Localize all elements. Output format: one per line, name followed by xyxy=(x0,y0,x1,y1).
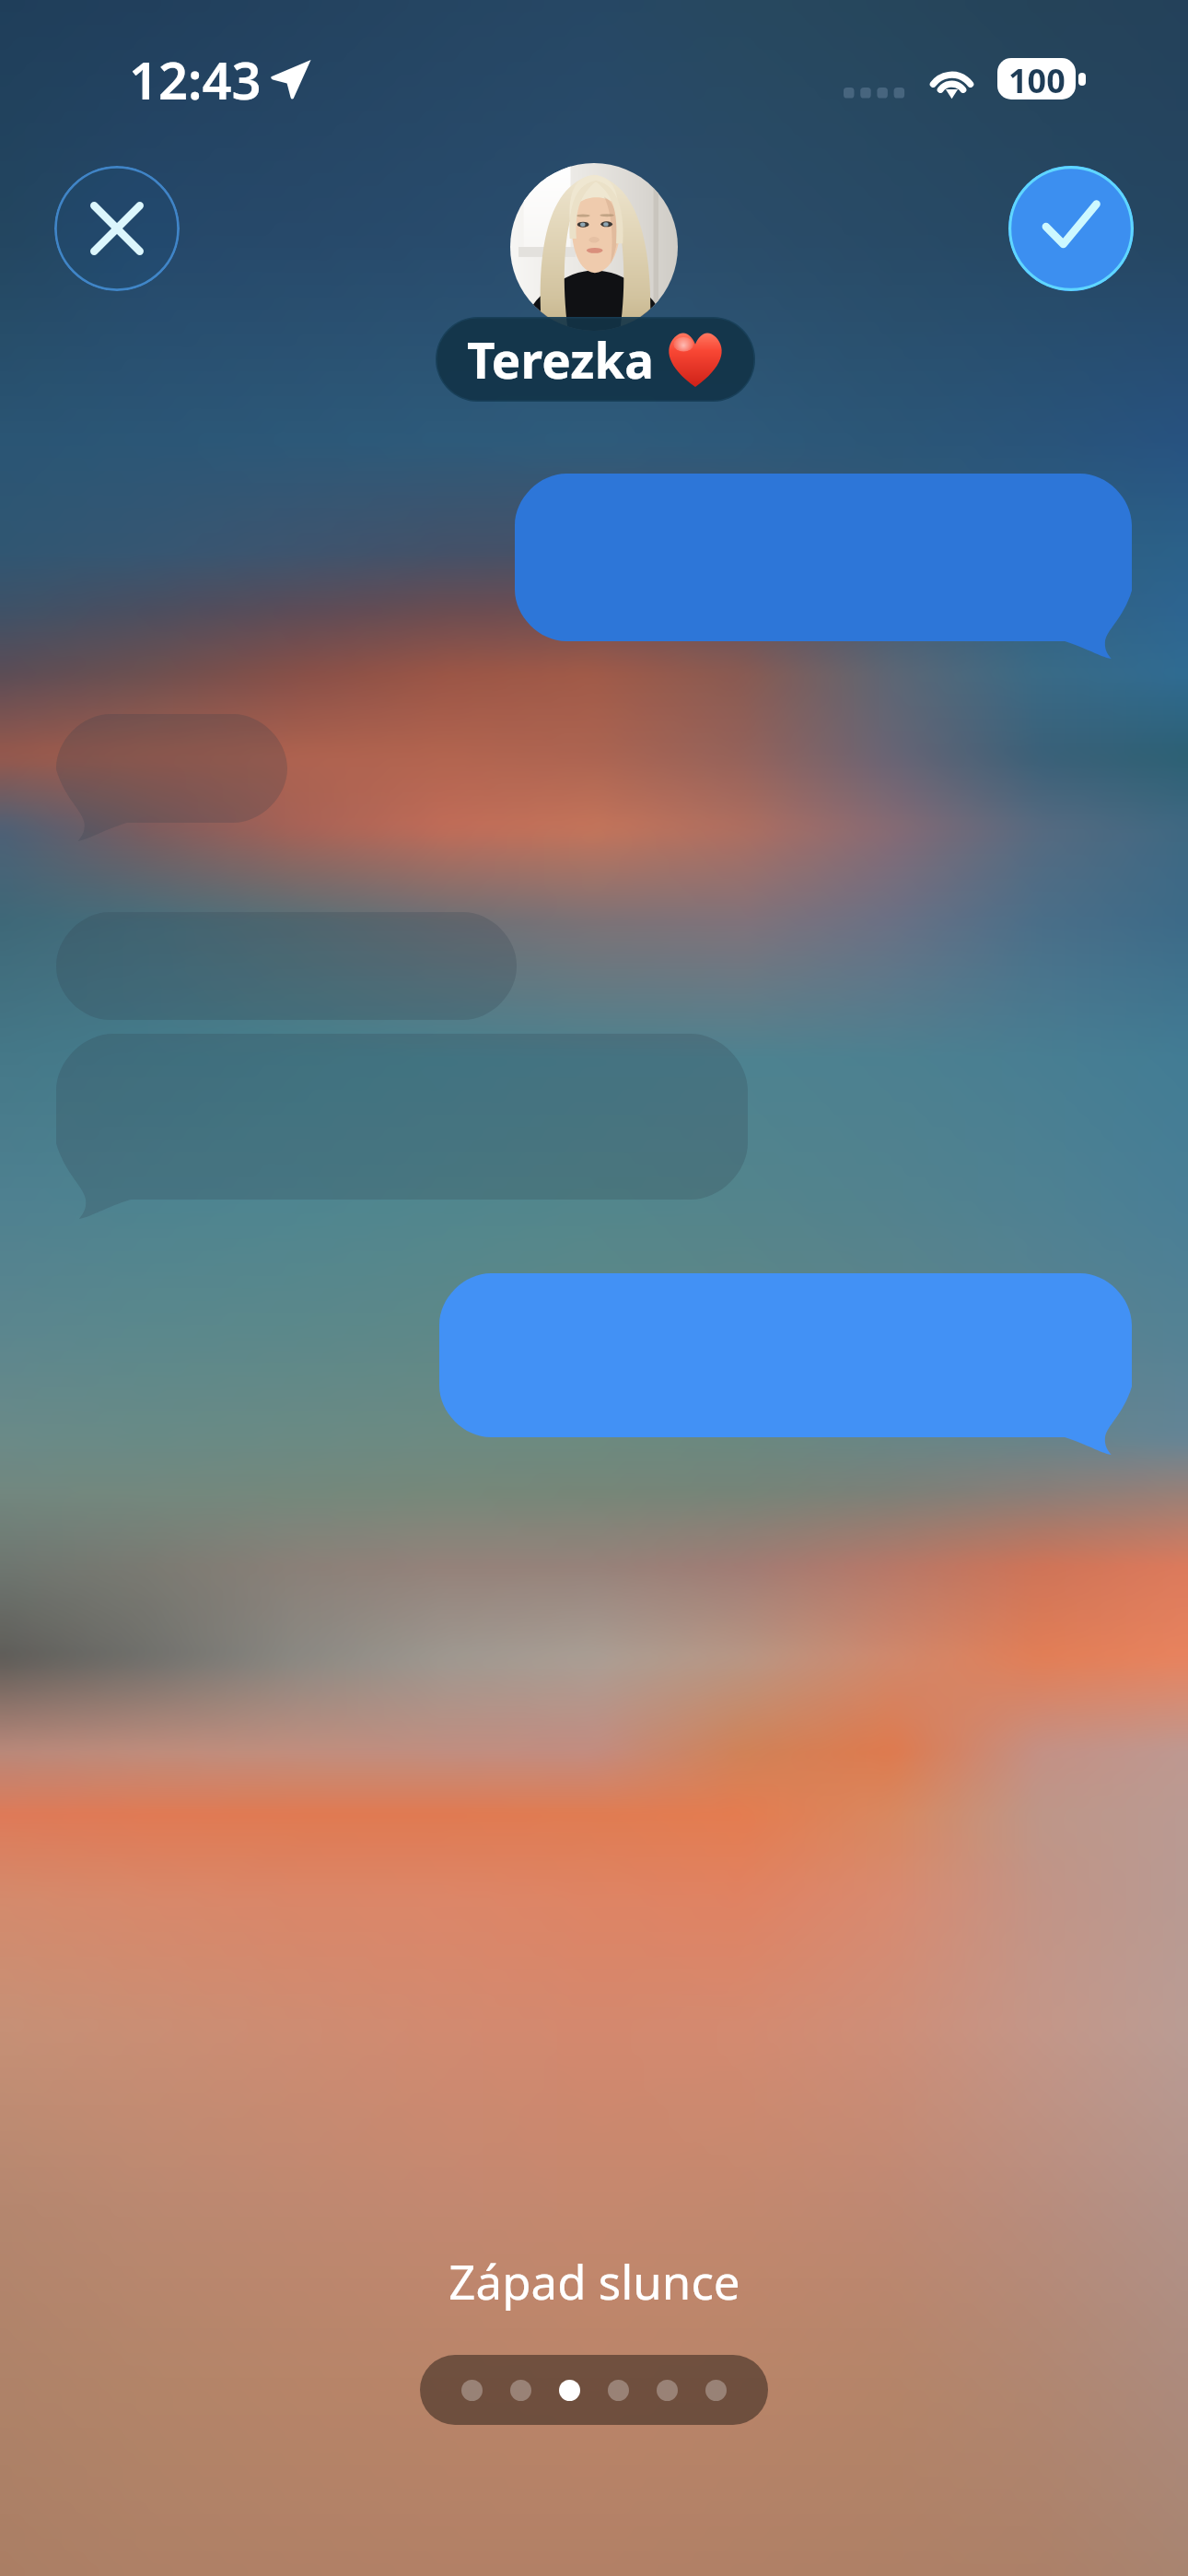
staticText: 12:43 xyxy=(129,44,262,114)
button[interactable]: Terezka xyxy=(436,317,755,402)
button[interactable]: Done xyxy=(1008,166,1134,291)
staticText: 100 xyxy=(1008,58,1066,100)
button[interactable]: Cancel xyxy=(54,166,180,291)
button[interactable] xyxy=(420,2355,768,2425)
button[interactable]: Contact photo xyxy=(510,163,678,331)
staticText: Terezka xyxy=(467,326,654,392)
staticText: Západ slunce xyxy=(448,2249,740,2313)
